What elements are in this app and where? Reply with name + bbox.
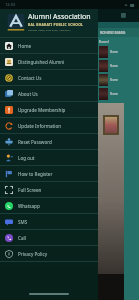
button[interactable]: Privacy Policy bbox=[0, 246, 98, 261]
other: Update Information bbox=[5, 122, 13, 130]
staticText: Full Screen bbox=[18, 187, 42, 193]
staticText: Call bbox=[18, 235, 26, 241]
staticText: Whatsapp bbox=[18, 203, 40, 209]
staticText: Contact Us bbox=[18, 75, 42, 81]
button[interactable]: Whatsapp bbox=[0, 198, 98, 213]
other: About Us bbox=[5, 90, 13, 98]
staticText: Update Information bbox=[18, 123, 62, 129]
staticText: Privacy Policy bbox=[18, 251, 47, 257]
staticText: Name bbox=[110, 78, 118, 82]
staticText: BAL BHARATI PUBLIC SCHOOL bbox=[28, 22, 84, 27]
button[interactable]: Update Information bbox=[0, 118, 98, 133]
staticText: ROHINI MARG bbox=[100, 30, 126, 35]
staticText: Alumni Association bbox=[28, 12, 91, 22]
button[interactable]: About Us bbox=[0, 86, 98, 101]
button[interactable]: Name bbox=[99, 74, 137, 86]
other: Distinguished Alumni bbox=[5, 58, 13, 66]
button[interactable]: Name bbox=[99, 46, 137, 58]
other: Contact Us bbox=[5, 74, 13, 82]
button[interactable]: Full Screen bbox=[0, 182, 98, 197]
other: Reset Password bbox=[5, 138, 13, 146]
other: SMS bbox=[5, 218, 13, 226]
staticText: Reset Password bbox=[18, 139, 52, 145]
button[interactable]: Home bbox=[0, 38, 98, 53]
staticText: Upgrade Membership bbox=[18, 107, 66, 113]
staticText: How to Register bbox=[18, 171, 53, 177]
staticText: Log out bbox=[18, 155, 35, 161]
other: Full Screen bbox=[5, 186, 13, 194]
button[interactable]: Upgrade Membership bbox=[0, 102, 98, 117]
button[interactable]: Call bbox=[0, 230, 98, 245]
other: Upgrade Membership bbox=[5, 106, 13, 114]
staticText: SMS bbox=[18, 219, 28, 225]
button[interactable]: How to Register bbox=[0, 166, 98, 181]
other: Home bbox=[5, 42, 13, 50]
staticText: 12:03 bbox=[5, 2, 16, 7]
button[interactable]: Name bbox=[99, 88, 137, 100]
other: How to Register bbox=[5, 170, 13, 178]
staticText: Name bbox=[110, 64, 118, 68]
other: Log out bbox=[5, 154, 13, 162]
staticText: Board bbox=[99, 39, 109, 44]
button[interactable]: Name bbox=[99, 60, 137, 72]
other: Whatsapp bbox=[5, 202, 13, 210]
other: Call bbox=[5, 234, 13, 242]
staticText: Home bbox=[18, 43, 32, 49]
button[interactable]: Contact Us bbox=[0, 70, 98, 85]
staticText: Distinguished Alumni bbox=[18, 59, 65, 65]
button[interactable]: Reset Password bbox=[0, 134, 98, 149]
button[interactable]: SMS bbox=[0, 214, 98, 229]
button[interactable]: Distinguished Alumni bbox=[0, 54, 98, 69]
staticText: Rajinder Nagar, Pusa Road, New Delhi bbox=[28, 28, 71, 31]
staticText: Name bbox=[110, 50, 118, 54]
other: Privacy Policy bbox=[5, 250, 13, 258]
staticText: About Us bbox=[18, 91, 38, 97]
staticText: Name bbox=[110, 92, 118, 96]
button[interactable]: Log out bbox=[0, 150, 98, 165]
